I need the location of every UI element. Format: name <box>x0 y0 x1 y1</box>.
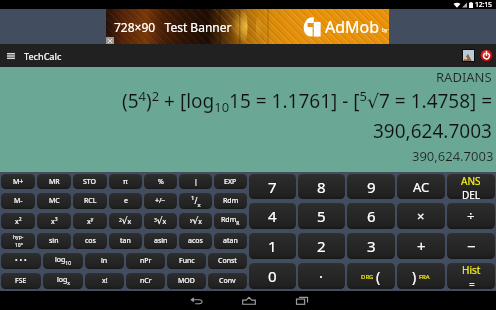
button[interactable]: 1 <box>249 233 296 259</box>
staticText: + <box>417 236 426 256</box>
button[interactable]: Conv <box>208 273 247 289</box>
button[interactable]: Hist <box>447 263 495 289</box>
button[interactable]: e <box>109 193 142 209</box>
staticText: Rdm <box>223 196 239 206</box>
staticText: nPr <box>140 256 152 266</box>
staticText: 12:15 <box>475 0 492 9</box>
button[interactable]: atan <box>214 233 247 249</box>
button[interactable]: M+ <box>1 174 35 189</box>
button[interactable]: cos <box>73 233 107 249</box>
button[interactable]: nPr <box>126 253 165 269</box>
button[interactable]: 8 <box>298 174 345 199</box>
button[interactable]: 1/x <box>179 193 212 209</box>
button[interactable]: 5 <box>298 203 345 229</box>
staticText: ( <box>376 267 381 286</box>
button[interactable]: ANS <box>447 174 495 199</box>
button[interactable]: · <box>298 263 345 289</box>
button[interactable]: log10 <box>43 253 83 269</box>
button[interactable]: hyp- <box>1 233 35 249</box>
button[interactable]: Home <box>240 292 258 309</box>
button[interactable]: 6 <box>347 203 395 229</box>
button[interactable]: − <box>447 233 495 259</box>
button[interactable]: 7 <box>249 174 296 199</box>
staticText: FSE <box>15 276 27 286</box>
button[interactable]: RdmR <box>214 213 247 229</box>
button[interactable]: Func <box>167 253 206 269</box>
button[interactable]: % <box>144 174 177 189</box>
button[interactable]: EXP <box>214 174 247 189</box>
button[interactable]: | <box>179 174 212 189</box>
button[interactable]: xy <box>73 213 107 229</box>
staticText: ) <box>412 267 417 286</box>
button[interactable]: sin <box>37 233 71 249</box>
button[interactable]: 4 <box>249 203 296 229</box>
staticText: ANS <box>461 174 481 188</box>
staticText: 390,624.7003 <box>373 118 492 144</box>
button[interactable]: Const <box>208 253 247 269</box>
button[interactable]: x! <box>85 273 124 289</box>
button[interactable]: MOD <box>167 273 206 289</box>
staticText: sin <box>49 236 59 246</box>
button[interactable]: Close ad <box>106 37 114 44</box>
button[interactable]: tan <box>109 233 142 249</box>
button[interactable]: asin <box>144 233 177 249</box>
button[interactable]: Power off <box>480 49 493 62</box>
button[interactable]: Recent apps <box>293 292 311 309</box>
button[interactable]: FSE <box>1 273 41 289</box>
button[interactable]: y√x <box>179 213 212 229</box>
staticText: asin <box>154 236 168 246</box>
staticText: x3 <box>51 216 58 226</box>
staticText: 1/x <box>191 194 201 209</box>
staticText: AdMob by Google <box>325 16 389 38</box>
staticText: TechCalc <box>24 50 62 62</box>
button[interactable]: RCL <box>73 193 107 209</box>
staticText: π <box>123 177 128 187</box>
staticText: ln <box>101 256 108 266</box>
button[interactable]: 3√x <box>144 213 177 229</box>
button[interactable]: 3 <box>347 233 395 259</box>
button[interactable]: ÷ <box>447 203 495 229</box>
staticText: = <box>469 277 475 289</box>
button[interactable]: +/− <box>144 193 177 209</box>
staticText: +/− <box>155 196 166 206</box>
staticText: nCr <box>140 276 152 286</box>
button[interactable]: • • • <box>1 253 41 269</box>
button[interactable]: + <box>397 233 445 259</box>
button[interactable]: 9 <box>347 174 395 199</box>
staticText: e <box>124 196 128 206</box>
button[interactable]: Photo <box>463 50 474 61</box>
button[interactable]: nCr <box>126 273 165 289</box>
button[interactable]: STO <box>73 174 107 189</box>
staticText: 390,624.7003 <box>412 147 494 165</box>
button[interactable]: π <box>109 174 142 189</box>
button[interactable]: AC <box>397 174 445 199</box>
button[interactable]: MC <box>37 193 71 209</box>
staticText: acos <box>188 236 203 246</box>
button[interactable]: x3 <box>37 213 71 229</box>
staticText: 10x <box>15 241 23 249</box>
staticText: AC <box>413 178 430 196</box>
staticText: MOD <box>178 276 195 286</box>
button[interactable]: Rdm <box>214 193 247 209</box>
button[interactable]: 2√x <box>109 213 142 229</box>
button[interactable]: acos <box>179 233 212 249</box>
button[interactable]: x2 <box>1 213 35 229</box>
staticText: M+ <box>13 177 24 187</box>
button[interactable]: 2 <box>298 233 345 259</box>
button[interactable]: ln <box>85 253 124 269</box>
staticText: 9 <box>367 177 376 197</box>
button[interactable]: × <box>397 203 445 229</box>
button[interactable]: M- <box>1 193 35 209</box>
button[interactable]: logx <box>43 273 83 289</box>
button[interactable]: Back <box>187 292 205 309</box>
button[interactable]: MR <box>37 174 71 189</box>
staticText: % <box>158 177 164 187</box>
button[interactable]: ) <box>397 263 445 289</box>
button[interactable]: Open navigation menu <box>0 44 22 67</box>
button[interactable]: DRG <box>347 263 395 289</box>
staticText: (54)2 + [log1015 = 1.1761] - [5√7 = 1.47… <box>122 87 493 116</box>
button[interactable]: 0 <box>249 263 296 289</box>
staticText: x2 <box>15 216 22 226</box>
staticText: 1 <box>268 236 277 256</box>
staticText: STO <box>83 177 97 187</box>
